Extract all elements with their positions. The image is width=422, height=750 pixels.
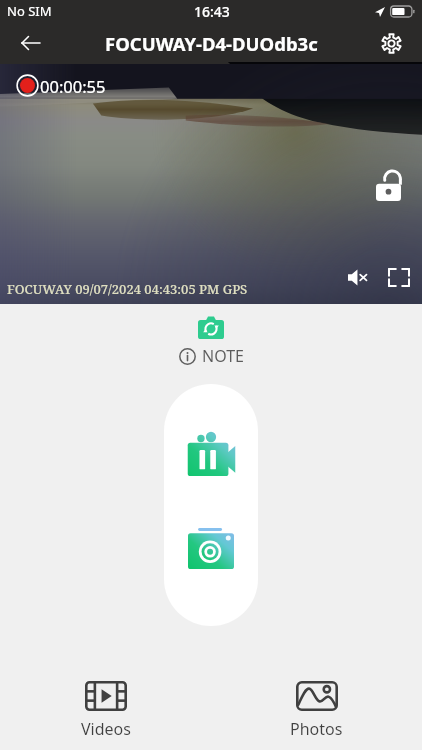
- staticText: FOCUWAY-D4-DUOdb3c: [105, 31, 318, 56]
- staticText: Photos: [290, 718, 343, 740]
- staticText: 16:43: [194, 2, 230, 21]
- staticText: 00:00:55: [40, 75, 106, 97]
- button[interactable]: NOTE: [175, 343, 248, 369]
- staticText: Videos: [81, 718, 131, 740]
- button[interactable]: Settings: [371, 23, 411, 63]
- button[interactable]: Fullscreen: [382, 260, 416, 294]
- staticText: NOTE: [202, 345, 244, 367]
- staticText: No SIM: [7, 2, 52, 20]
- button[interactable]: Mute: [341, 260, 375, 294]
- button[interactable]: Unlock: [365, 162, 411, 208]
- button[interactable]: Take photo: [184, 519, 238, 573]
- button[interactable]: Switch camera: [196, 312, 226, 342]
- button[interactable]: Videos: [0, 677, 211, 744]
- button[interactable]: Record video: [184, 424, 238, 478]
- staticText: FOCUWAY 09/07/2024 04:43:05 PM GPS: [7, 280, 248, 298]
- button[interactable]: Photos: [211, 677, 422, 744]
- button[interactable]: Back: [11, 23, 51, 63]
